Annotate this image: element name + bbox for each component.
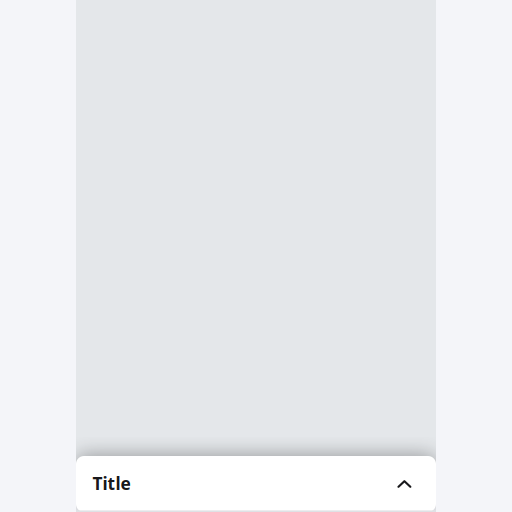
- button[interactable]: Title: [76, 456, 436, 510]
- staticText: Title: [92, 472, 130, 495]
